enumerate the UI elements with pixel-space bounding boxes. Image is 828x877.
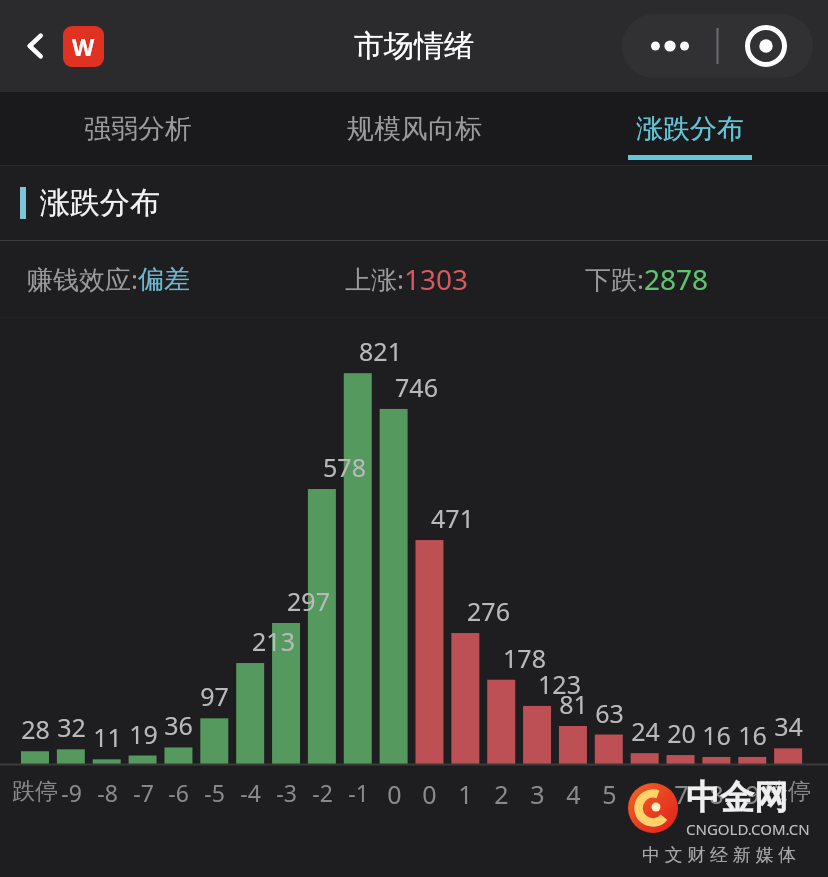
button[interactable]: Back — [12, 22, 60, 70]
staticText: 297 — [287, 584, 330, 618]
staticText: -3 — [276, 777, 297, 808]
staticText: 81 — [559, 687, 588, 721]
staticText: 34 — [774, 709, 803, 743]
staticText: -1 — [348, 777, 369, 808]
staticText: 123 — [538, 667, 581, 701]
button[interactable]: App — [63, 26, 104, 67]
button[interactable]: More options — [622, 14, 717, 78]
staticText: 36 — [164, 708, 193, 742]
staticText: 9 — [745, 777, 760, 811]
staticText: 0 — [387, 777, 402, 811]
staticText: 24 — [631, 714, 660, 748]
staticText: 中 文 财 经 新 媒 体 — [642, 842, 797, 867]
staticText: 强弱分析 — [84, 112, 192, 146]
staticText: 2 — [494, 777, 509, 811]
staticText: -2 — [312, 777, 333, 808]
staticText: 7 — [674, 777, 689, 811]
staticText: 8 — [709, 777, 724, 811]
staticText: 97 — [200, 679, 229, 713]
staticText: 6 — [638, 777, 653, 811]
button[interactable]: Close — [718, 14, 813, 78]
staticText: -9 — [61, 777, 82, 808]
staticText: 178 — [503, 641, 546, 675]
staticText: 涨跌分布 — [636, 112, 744, 146]
staticText: -7 — [133, 777, 154, 808]
button[interactable]: 规模风向标 — [276, 92, 552, 166]
staticText: 821 — [359, 334, 402, 368]
staticText: 上涨: — [345, 261, 404, 297]
staticText: 11 — [93, 720, 122, 754]
button[interactable]: 涨跌分布 — [552, 92, 828, 166]
staticText: W — [72, 31, 95, 62]
staticText: 2878 — [644, 260, 709, 298]
staticText: -4 — [240, 777, 261, 808]
staticText: 偏差 — [138, 263, 190, 296]
staticText: 赚钱效应: — [27, 261, 138, 297]
staticText: 20 — [667, 716, 696, 750]
staticText: 471 — [431, 501, 474, 535]
staticText: -8 — [97, 777, 118, 808]
staticText: 5 — [602, 777, 617, 811]
staticText: 3 — [530, 777, 545, 811]
staticText: 578 — [323, 450, 366, 484]
staticText: 涨停 — [765, 777, 811, 806]
staticText: 中金网 — [686, 776, 788, 819]
staticText: 跌停 — [12, 777, 58, 806]
staticText: -5 — [204, 777, 225, 808]
staticText: 涨跌分布 — [40, 184, 160, 222]
staticText: 下跌: — [585, 261, 644, 297]
staticText: 16 — [738, 718, 767, 752]
staticText: 4 — [566, 777, 581, 811]
staticText: 63 — [595, 696, 624, 730]
staticText: 规模风向标 — [347, 112, 482, 146]
staticText: 746 — [395, 370, 438, 404]
staticText: 28 — [21, 712, 50, 746]
staticText: 0 — [422, 777, 437, 811]
staticText: 213 — [252, 624, 295, 658]
staticText: 1303 — [404, 260, 469, 298]
button[interactable]: 强弱分析 — [0, 92, 276, 166]
staticText: 市场情绪 — [354, 27, 474, 65]
staticText: 276 — [467, 594, 510, 628]
staticText: 19 — [129, 717, 158, 751]
staticText: 1 — [458, 777, 473, 811]
staticText: 32 — [57, 710, 86, 744]
staticText: 16 — [702, 718, 731, 752]
staticText: -6 — [168, 777, 189, 808]
staticText: CNGOLD.COM.CN — [686, 819, 810, 839]
